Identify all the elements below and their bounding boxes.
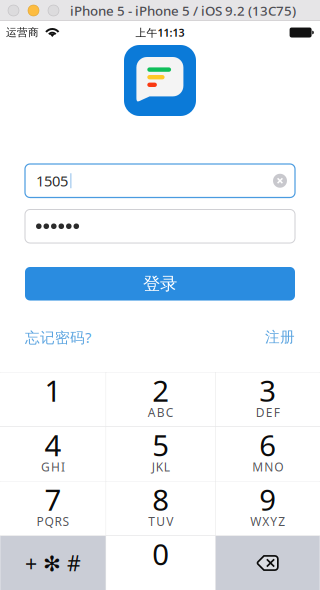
button[interactable]: 7 [0,481,106,535]
staticText: 上午11:13 [135,25,184,40]
staticText: 4 [44,425,61,464]
button[interactable]: 4 [0,427,106,481]
staticText: T U V [148,513,173,529]
button[interactable]: 0 [106,536,215,590]
staticText: M N O [252,459,283,475]
button[interactable]: 6 [216,427,320,481]
button[interactable]: 1505 [25,164,295,197]
staticText: 1 [44,371,61,410]
staticText: 7 [44,480,61,519]
button[interactable]: 8 [106,481,215,535]
button[interactable]: Clear text [267,168,293,194]
button[interactable]: 忘记密码? [25,327,91,347]
staticText: 9 [259,480,276,519]
button[interactable]: 2 [106,372,215,426]
staticText: W X Y Z [250,513,285,529]
button[interactable]: 5 [106,427,215,481]
staticText: 2 [152,371,169,410]
staticText: 注册 [265,328,295,346]
button[interactable]: 9 [216,481,320,535]
staticText: 运营商 [6,26,39,39]
button[interactable] [25,209,295,243]
staticText: A B C [148,404,174,420]
staticText: 3 [259,371,276,410]
button[interactable]: 1 [0,372,106,426]
staticText: iPhone 5 - iPhone 5 / iOS 9.2 (13C75) [70,2,296,19]
button[interactable]: Symbols [0,536,106,590]
staticText: 5 [152,425,169,464]
staticText: G H I [41,459,65,475]
staticText: 6 [259,425,276,464]
staticText: 1505 [36,171,68,190]
staticText: P Q R S [36,513,69,529]
button[interactable]: 登录 [0,267,320,300]
button[interactable]: Delete [216,536,320,590]
button[interactable]: 注册 [265,328,295,346]
staticText: D E F [256,404,280,420]
staticText: J K L [152,459,170,475]
staticText: 登录 [143,273,177,294]
staticText: 0 [152,534,169,573]
staticText: 忘记密码? [25,327,91,347]
staticText: + ✻ # [25,549,81,577]
staticText: 8 [152,480,169,519]
button[interactable]: 3 [216,372,320,426]
